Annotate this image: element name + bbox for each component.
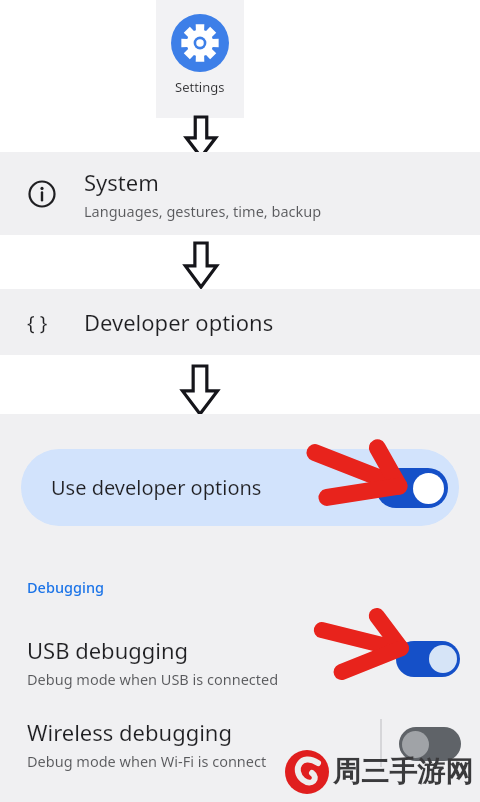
staticText: Debug mode when Wi-Fi is connect <box>27 751 267 771</box>
button[interactable]: System <box>0 152 480 235</box>
staticText: USB debugging <box>27 635 189 665</box>
staticText: Debugging <box>27 577 104 597</box>
button[interactable]: { } <box>0 289 480 355</box>
button[interactable]: USB debugging toggle <box>396 641 460 677</box>
staticText: 周三手游网 <box>333 754 473 789</box>
button[interactable]: USB debugging <box>0 619 480 704</box>
button[interactable]: Use developer options <box>21 449 459 526</box>
button[interactable]: Wireless debugging <box>0 711 480 786</box>
staticText: Wireless debugging <box>27 717 232 747</box>
staticText: Settings <box>175 78 225 96</box>
staticText: System <box>84 167 159 197</box>
button[interactable]: Wireless debugging toggle <box>399 727 461 761</box>
staticText: Languages, gestures, time, backup <box>84 201 322 221</box>
staticText: Developer options <box>84 307 274 337</box>
staticText: Use developer options <box>51 474 262 501</box>
button[interactable]: Settings app <box>156 0 244 118</box>
staticText: Debug mode when USB is connected <box>27 669 279 689</box>
button[interactable]: Use developer options toggle <box>376 468 448 508</box>
staticText: { } <box>27 309 48 336</box>
